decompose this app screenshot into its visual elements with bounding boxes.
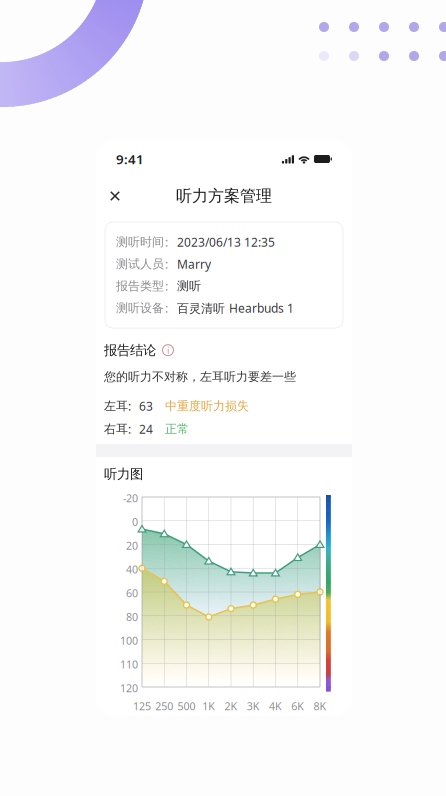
staticText: 8K xyxy=(313,699,326,713)
staticText: 20 xyxy=(126,538,138,553)
staticText: 4K xyxy=(269,699,282,713)
staticText: 报告结论 xyxy=(104,342,156,358)
staticText: 正常 xyxy=(165,422,189,436)
staticText: 2023/06/13 12:35 xyxy=(177,234,275,250)
staticText: 6K xyxy=(291,699,304,713)
staticText: 1K xyxy=(202,699,215,713)
staticText: 听力图 xyxy=(104,466,143,482)
staticText: 百灵清听 Hearbuds 1 xyxy=(177,300,294,316)
staticText: 中重度听力损失 xyxy=(165,399,249,413)
staticText: i xyxy=(167,344,169,356)
staticText: 24 xyxy=(139,421,153,437)
staticText: : xyxy=(165,278,168,294)
staticText: : xyxy=(165,300,168,316)
staticText: 63 xyxy=(139,398,153,414)
staticText: 测听 xyxy=(177,279,201,293)
staticText: 60 xyxy=(126,586,138,600)
button[interactable]: Close xyxy=(104,185,126,207)
staticText: 听力方案管理 xyxy=(176,186,272,206)
staticText: 左耳 xyxy=(104,399,128,413)
staticText: 右耳 xyxy=(104,422,128,436)
staticText: : xyxy=(128,398,131,414)
staticText: 500 xyxy=(177,699,195,713)
staticText: : xyxy=(165,256,168,272)
staticText: : xyxy=(165,234,168,250)
staticText: : xyxy=(128,421,131,437)
staticText: 报告类型 xyxy=(116,279,164,293)
staticText: 测听设备 xyxy=(116,301,164,315)
staticText: Marry xyxy=(177,256,211,272)
staticText: 2K xyxy=(224,699,237,713)
staticText: 9:41 xyxy=(116,150,144,168)
staticText: 110 xyxy=(120,657,138,671)
staticText: 40 xyxy=(126,562,138,576)
staticText: 0 xyxy=(132,515,138,529)
staticText: 3K xyxy=(247,699,260,713)
staticText: 125 xyxy=(133,699,151,713)
staticText: 您的听力不对称，左耳听力要差一些 xyxy=(104,369,296,384)
staticText: 250 xyxy=(155,699,173,713)
staticText: 测听时间 xyxy=(116,235,164,249)
staticText: -20 xyxy=(123,491,138,505)
staticText: 测试人员 xyxy=(116,257,164,271)
staticText: 100 xyxy=(120,633,138,648)
staticText: 120 xyxy=(120,681,138,695)
staticText: 80 xyxy=(126,610,138,624)
